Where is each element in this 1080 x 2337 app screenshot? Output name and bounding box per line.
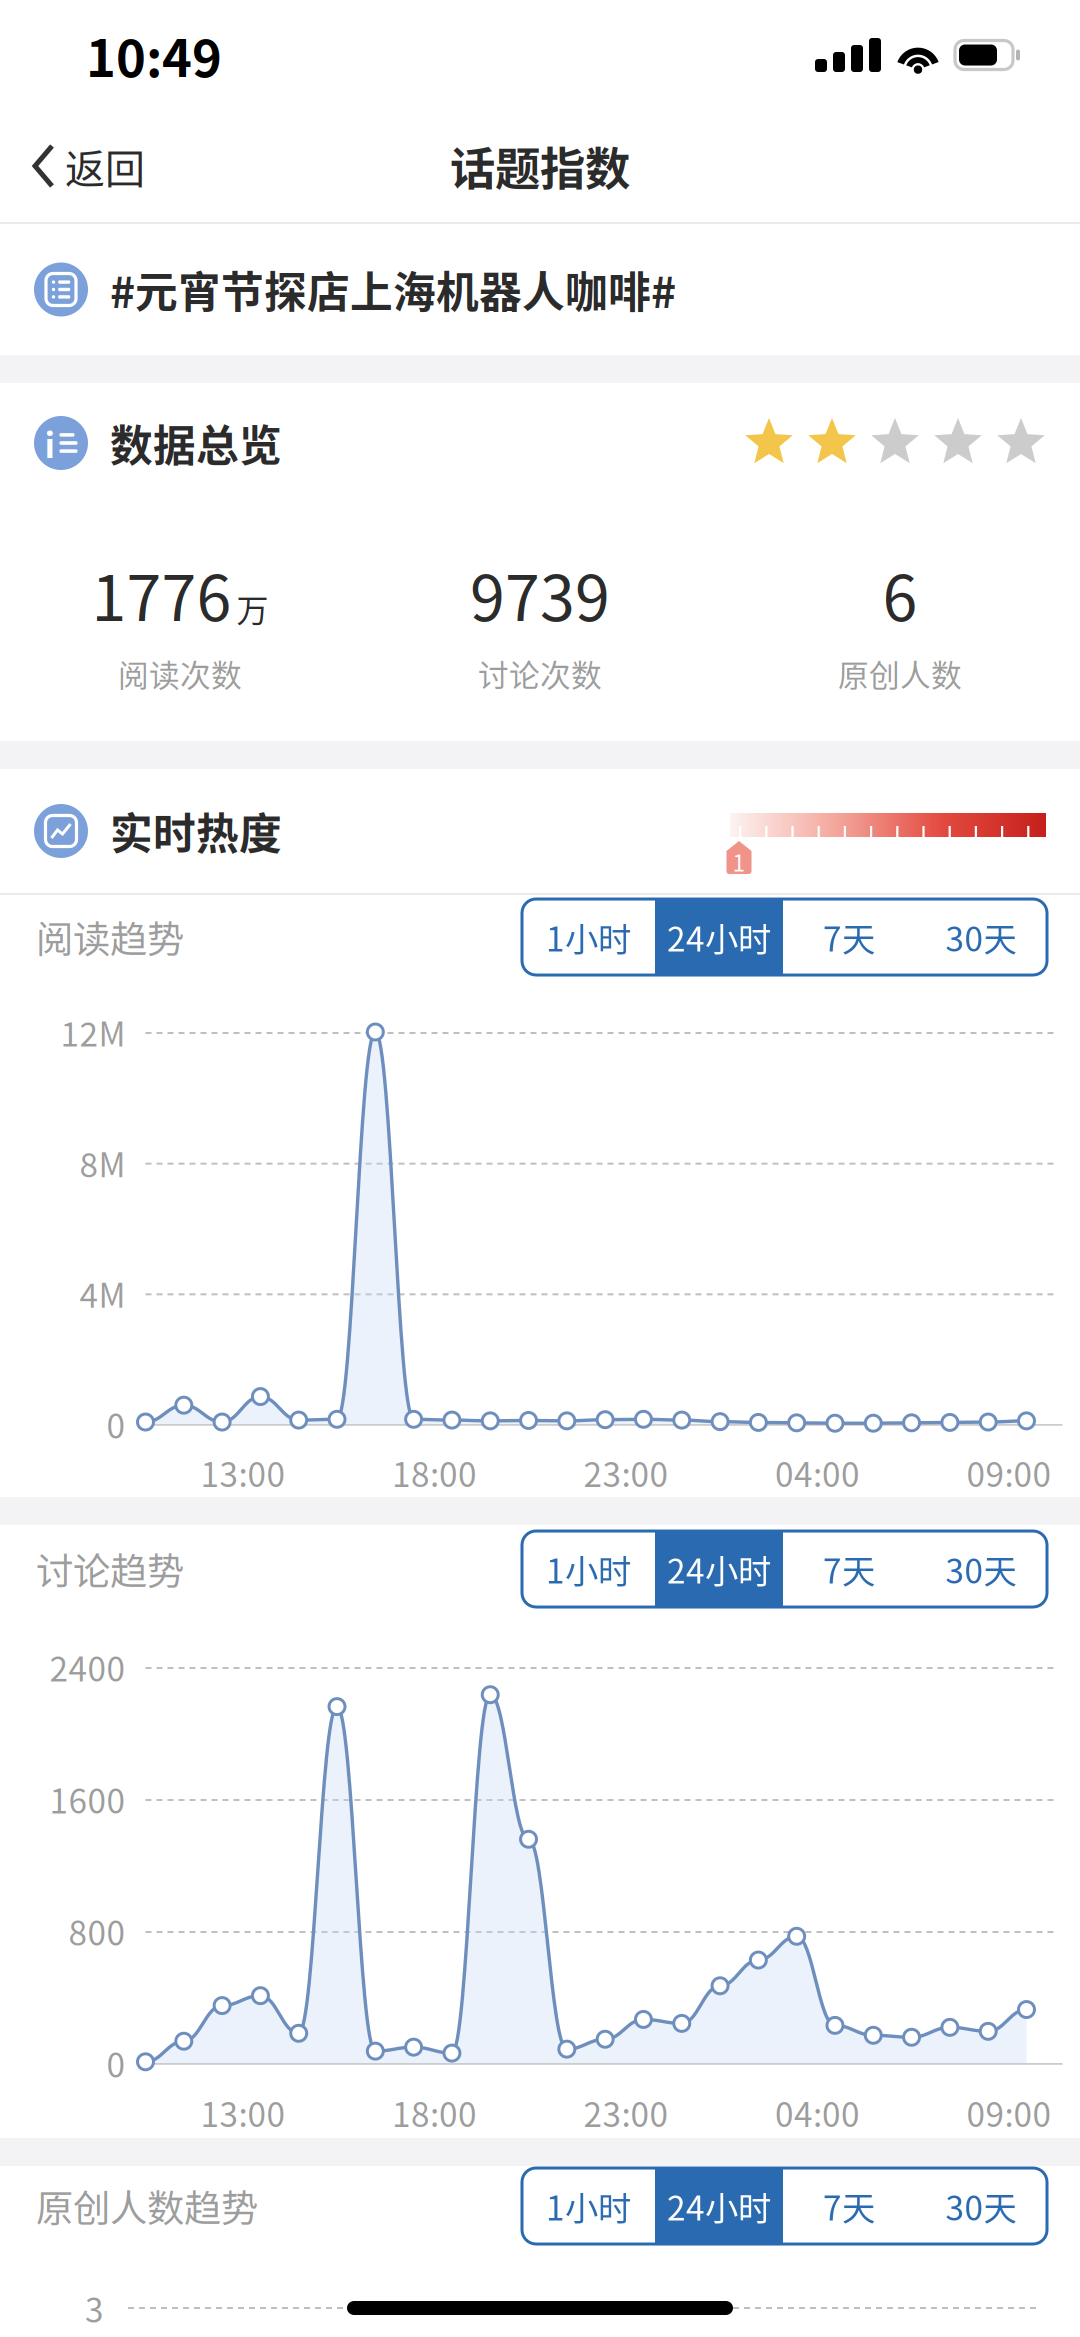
staticText: 7天 (823, 2182, 875, 2230)
staticText: 13:00 (200, 1448, 285, 1497)
staticText: 18:00 (392, 2088, 477, 2137)
staticText: 9739 (470, 548, 610, 639)
staticText: 原创人数 (838, 651, 962, 696)
staticText: 2400 (49, 1643, 125, 1691)
staticText: 13:00 (200, 2088, 285, 2137)
button[interactable]: 1小时 (522, 899, 655, 975)
staticText: 讨论趋势 (36, 1542, 184, 1596)
button[interactable]: 30天 (915, 2168, 1047, 2244)
staticText: 30天 (945, 1545, 1016, 1593)
staticText: 原创人数趋势 (36, 2179, 258, 2233)
button[interactable]: 1小时 (522, 1531, 655, 1607)
staticText: #元宵节探店上海机器人咖啡# (110, 259, 676, 320)
staticText: 话题指数 (450, 133, 630, 199)
staticText: 24小时 (667, 1545, 771, 1593)
staticText: 返回 (65, 137, 145, 195)
staticText: 1776 (91, 548, 231, 639)
staticText: 23:00 (583, 1448, 668, 1497)
button[interactable]: 7天 (783, 2168, 915, 2244)
staticText: 23:00 (583, 2088, 668, 2137)
button[interactable]: 1小时 (522, 2168, 655, 2244)
staticText: 万 (236, 585, 268, 631)
button[interactable]: 30天 (915, 899, 1047, 975)
staticText: 04:00 (775, 2088, 860, 2137)
staticText: 1小时 (546, 1545, 631, 1593)
staticText: 09:00 (966, 2088, 1051, 2137)
staticText: 30天 (945, 913, 1016, 961)
staticText: 1小时 (546, 913, 631, 961)
staticText: 30天 (945, 2182, 1016, 2230)
button[interactable]: 24小时 (655, 2168, 783, 2244)
staticText: 0 (106, 2039, 125, 2087)
button[interactable]: 返回 (0, 110, 169, 222)
staticText: 09:00 (966, 1448, 1051, 1497)
staticText: 1小时 (546, 2182, 631, 2230)
staticText: 3 (85, 2284, 104, 2332)
staticText: 12M (60, 1008, 125, 1056)
staticText: 阅读趋势 (36, 910, 184, 964)
staticText: 10:49 (86, 18, 222, 92)
staticText: 800 (68, 1907, 125, 1955)
staticText: 数据总览 (110, 412, 282, 474)
staticText: 1600 (49, 1775, 125, 1823)
staticText: 0 (106, 1400, 125, 1448)
button[interactable]: 24小时 (655, 899, 783, 975)
button[interactable]: 24小时 (655, 1531, 783, 1607)
staticText: 6 (882, 548, 917, 639)
staticText: 8M (79, 1138, 125, 1187)
staticText: 7天 (823, 1545, 875, 1593)
staticText: 24小时 (667, 2182, 771, 2230)
button[interactable]: 30天 (915, 1531, 1047, 1607)
staticText: 4M (79, 1269, 125, 1317)
staticText: 讨论次数 (478, 651, 602, 696)
staticText: 18:00 (392, 1448, 477, 1497)
staticText: 7天 (823, 913, 875, 961)
button[interactable]: 7天 (783, 1531, 915, 1607)
staticText: 1 (732, 845, 745, 878)
staticText: 24小时 (667, 913, 771, 961)
button[interactable]: #元宵节探店上海机器人咖啡# (0, 224, 1080, 355)
button[interactable]: 7天 (783, 899, 915, 975)
staticText: 阅读次数 (118, 651, 242, 696)
staticText: i (44, 418, 55, 468)
staticText: 04:00 (775, 1448, 860, 1497)
staticText: 实时热度 (110, 800, 282, 862)
